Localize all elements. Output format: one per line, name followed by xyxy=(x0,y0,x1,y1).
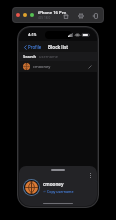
staticText: cmooney xyxy=(33,64,87,69)
button[interactable]: Rotate xyxy=(91,11,100,20)
button[interactable]: More options xyxy=(87,172,94,179)
button[interactable]: Close xyxy=(16,13,20,17)
button[interactable]: cmooney xyxy=(19,61,97,72)
staticText: Copy username xyxy=(47,189,74,194)
staticText: iPhone 16 Pro xyxy=(38,10,66,16)
staticText: username xyxy=(39,54,59,59)
button[interactable]: Edit xyxy=(87,64,93,70)
button[interactable]: Home xyxy=(61,11,70,20)
button[interactable]: Profile xyxy=(22,43,44,51)
button[interactable]: Search xyxy=(19,52,97,61)
staticText: 4:15 xyxy=(28,32,37,38)
staticText: Search xyxy=(23,54,37,59)
staticText: Block list xyxy=(48,44,69,50)
staticText: cmooney xyxy=(43,181,64,187)
staticText: Profile xyxy=(28,44,42,50)
button[interactable]: Settings xyxy=(76,11,85,20)
button[interactable]: Minimize xyxy=(23,13,27,17)
button[interactable]: Zoom xyxy=(30,13,34,17)
button[interactable]: cmooney xyxy=(23,179,74,196)
staticText: iOS 18.0 xyxy=(38,16,51,20)
